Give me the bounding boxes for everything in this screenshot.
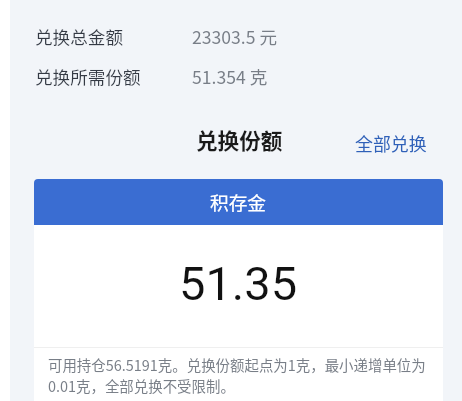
- staticText: 全部兑换: [355, 130, 427, 156]
- staticText: 兑换所需份额: [35, 64, 141, 89]
- staticText: 23303.5 元: [192, 24, 278, 49]
- staticText: 兑换份额: [196, 124, 283, 155]
- staticText: 51.35: [179, 256, 298, 311]
- staticText: 51.354 克: [192, 64, 268, 89]
- staticText: 可用持仓56.5191克。兑换份额起点为1克，最小递增单位为0.01克，全部兑换…: [48, 354, 429, 396]
- staticText: 积存金: [210, 188, 267, 215]
- button[interactable]: 全部兑换: [355, 130, 427, 156]
- staticText: 兑换总金额: [35, 24, 123, 49]
- button[interactable]: 积存金: [34, 179, 443, 225]
